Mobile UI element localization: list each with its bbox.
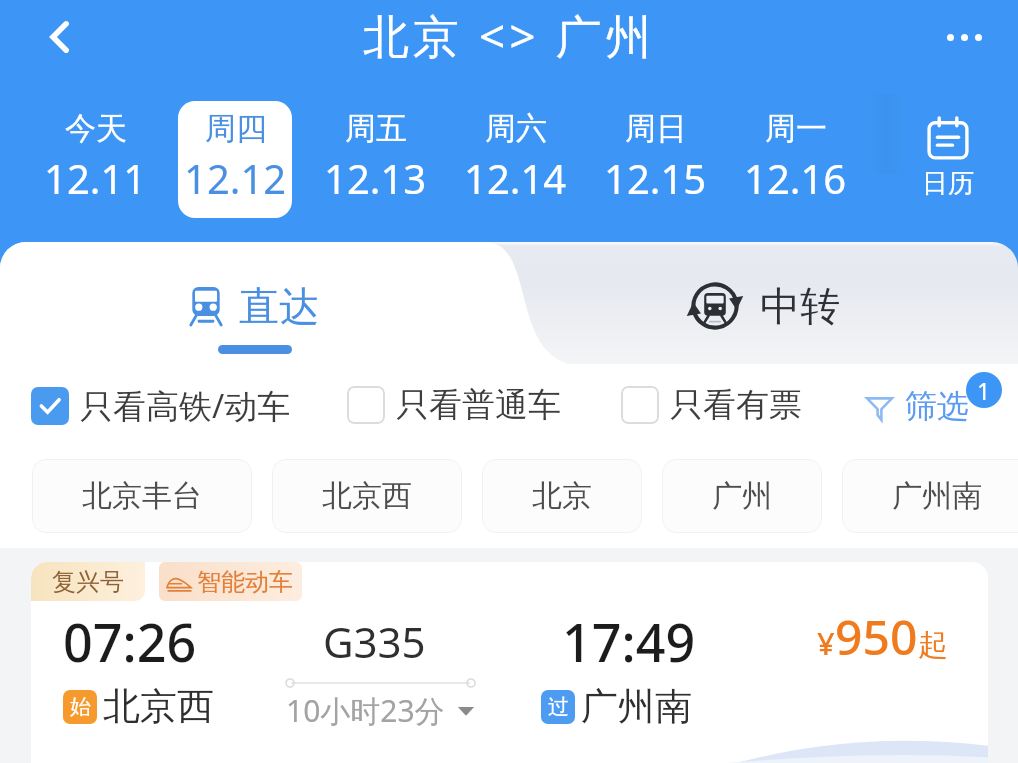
button[interactable]: 北京西: [272, 459, 462, 533]
button[interactable]: 北京丰台: [32, 459, 252, 533]
staticText: 12.12: [184, 151, 287, 205]
staticText: 周日: [625, 109, 687, 148]
staticText: 起: [918, 626, 948, 664]
button[interactable]: 周四: [178, 101, 292, 218]
staticText: G335: [323, 613, 426, 670]
button[interactable]: Back: [30, 7, 90, 67]
staticText: 筛选: [905, 386, 969, 426]
button[interactable]: 周五: [318, 101, 432, 218]
staticText: 10小时23分: [286, 690, 445, 731]
staticText: 中转: [760, 281, 840, 331]
staticText: 广州南: [581, 683, 692, 730]
staticText: 950: [835, 604, 918, 669]
button[interactable]: 中转: [509, 242, 1018, 364]
staticText: 北京 <> 广州: [363, 4, 656, 67]
staticText: 北京西: [103, 683, 214, 730]
staticText: 周一: [765, 109, 827, 148]
staticText: 12.16: [744, 151, 847, 205]
staticText: 只看有票: [670, 384, 802, 426]
staticText: 复兴号: [52, 567, 124, 597]
button[interactable]: 广州南: [842, 459, 1018, 533]
button[interactable]: 直达: [0, 242, 509, 364]
staticText: 周六: [485, 109, 547, 148]
staticText: 今天: [65, 109, 127, 148]
button[interactable]: 广州: [662, 459, 822, 533]
staticText: 17:49: [562, 606, 696, 677]
staticText: 只看高铁/动车: [80, 383, 291, 428]
button[interactable]: 只看普通车: [347, 384, 561, 426]
button[interactable]: 筛选: [866, 386, 969, 426]
staticText: 07:26: [63, 606, 197, 677]
staticText: 1: [977, 375, 991, 406]
button[interactable]: 周日: [598, 101, 712, 218]
staticText: 周四: [205, 109, 267, 148]
staticText: 直达: [239, 281, 319, 331]
staticText: 北京丰台: [82, 477, 202, 515]
staticText: 始: [70, 694, 91, 720]
button[interactable]: Calendar: [905, 74, 1018, 218]
staticText: 广州: [712, 477, 772, 515]
staticText: 北京西: [322, 477, 412, 515]
staticText: 日历: [922, 167, 974, 200]
staticText: 12.13: [324, 151, 427, 205]
button[interactable]: 只看有票: [621, 384, 802, 426]
staticText: 12.11: [44, 151, 147, 205]
staticText: 广州南: [892, 477, 982, 515]
button[interactable]: More options: [934, 7, 994, 67]
staticText: 周五: [345, 109, 407, 148]
staticText: 12.15: [604, 151, 707, 205]
staticText: 智能动车: [197, 567, 293, 597]
button[interactable]: 今天: [38, 101, 152, 218]
button[interactable]: 北京: [482, 459, 642, 533]
staticText: 只看普通车: [396, 384, 561, 426]
staticText: 12.14: [464, 151, 567, 205]
staticText: 过: [548, 694, 569, 720]
button[interactable]: 只看高铁/动车: [31, 383, 291, 428]
button[interactable]: 复兴号: [31, 562, 988, 763]
button[interactable]: 周一: [738, 101, 852, 218]
staticText: ¥: [817, 622, 835, 664]
button[interactable]: 周六: [458, 101, 572, 218]
staticText: 北京: [532, 477, 592, 515]
